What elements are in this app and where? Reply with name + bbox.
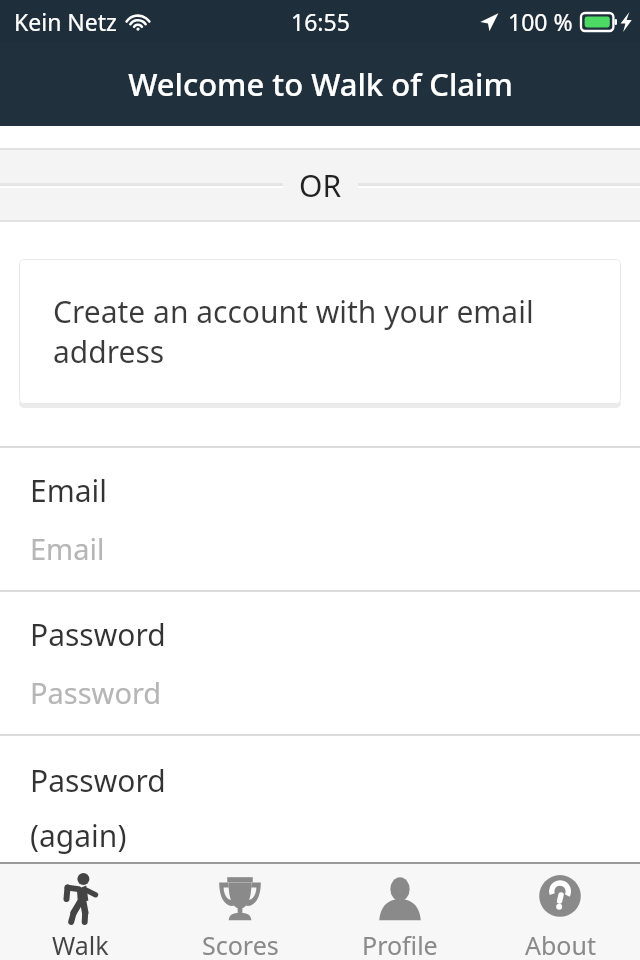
staticText: Profile bbox=[362, 928, 438, 960]
staticText: Scores bbox=[202, 928, 279, 960]
staticText: 100 % bbox=[508, 6, 573, 37]
button[interactable]: Profile bbox=[320, 864, 480, 960]
staticText: Password bbox=[30, 673, 162, 712]
staticText: Email bbox=[30, 470, 108, 511]
staticText: Kein Netz bbox=[14, 6, 117, 37]
staticText: Walk bbox=[52, 928, 109, 960]
button[interactable]: Password bbox=[0, 736, 640, 854]
staticText: About bbox=[525, 928, 596, 960]
button[interactable]: Scores bbox=[160, 864, 320, 960]
button[interactable]: Password bbox=[0, 592, 640, 734]
staticText: Welcome to Walk of Claim bbox=[128, 63, 513, 105]
button[interactable]: Walk bbox=[0, 864, 160, 960]
button[interactable]: About bbox=[480, 864, 640, 960]
staticText: 16:55 bbox=[291, 6, 350, 37]
staticText: (again) bbox=[30, 815, 127, 854]
staticText: OR bbox=[299, 165, 342, 206]
staticText: Password bbox=[30, 760, 166, 801]
button[interactable]: Create an account with your email addres… bbox=[19, 259, 621, 404]
staticText: Password bbox=[30, 614, 166, 655]
staticText: Email bbox=[30, 529, 105, 568]
staticText: Create an account with your email addres… bbox=[53, 291, 597, 372]
button[interactable]: Email bbox=[0, 448, 640, 590]
